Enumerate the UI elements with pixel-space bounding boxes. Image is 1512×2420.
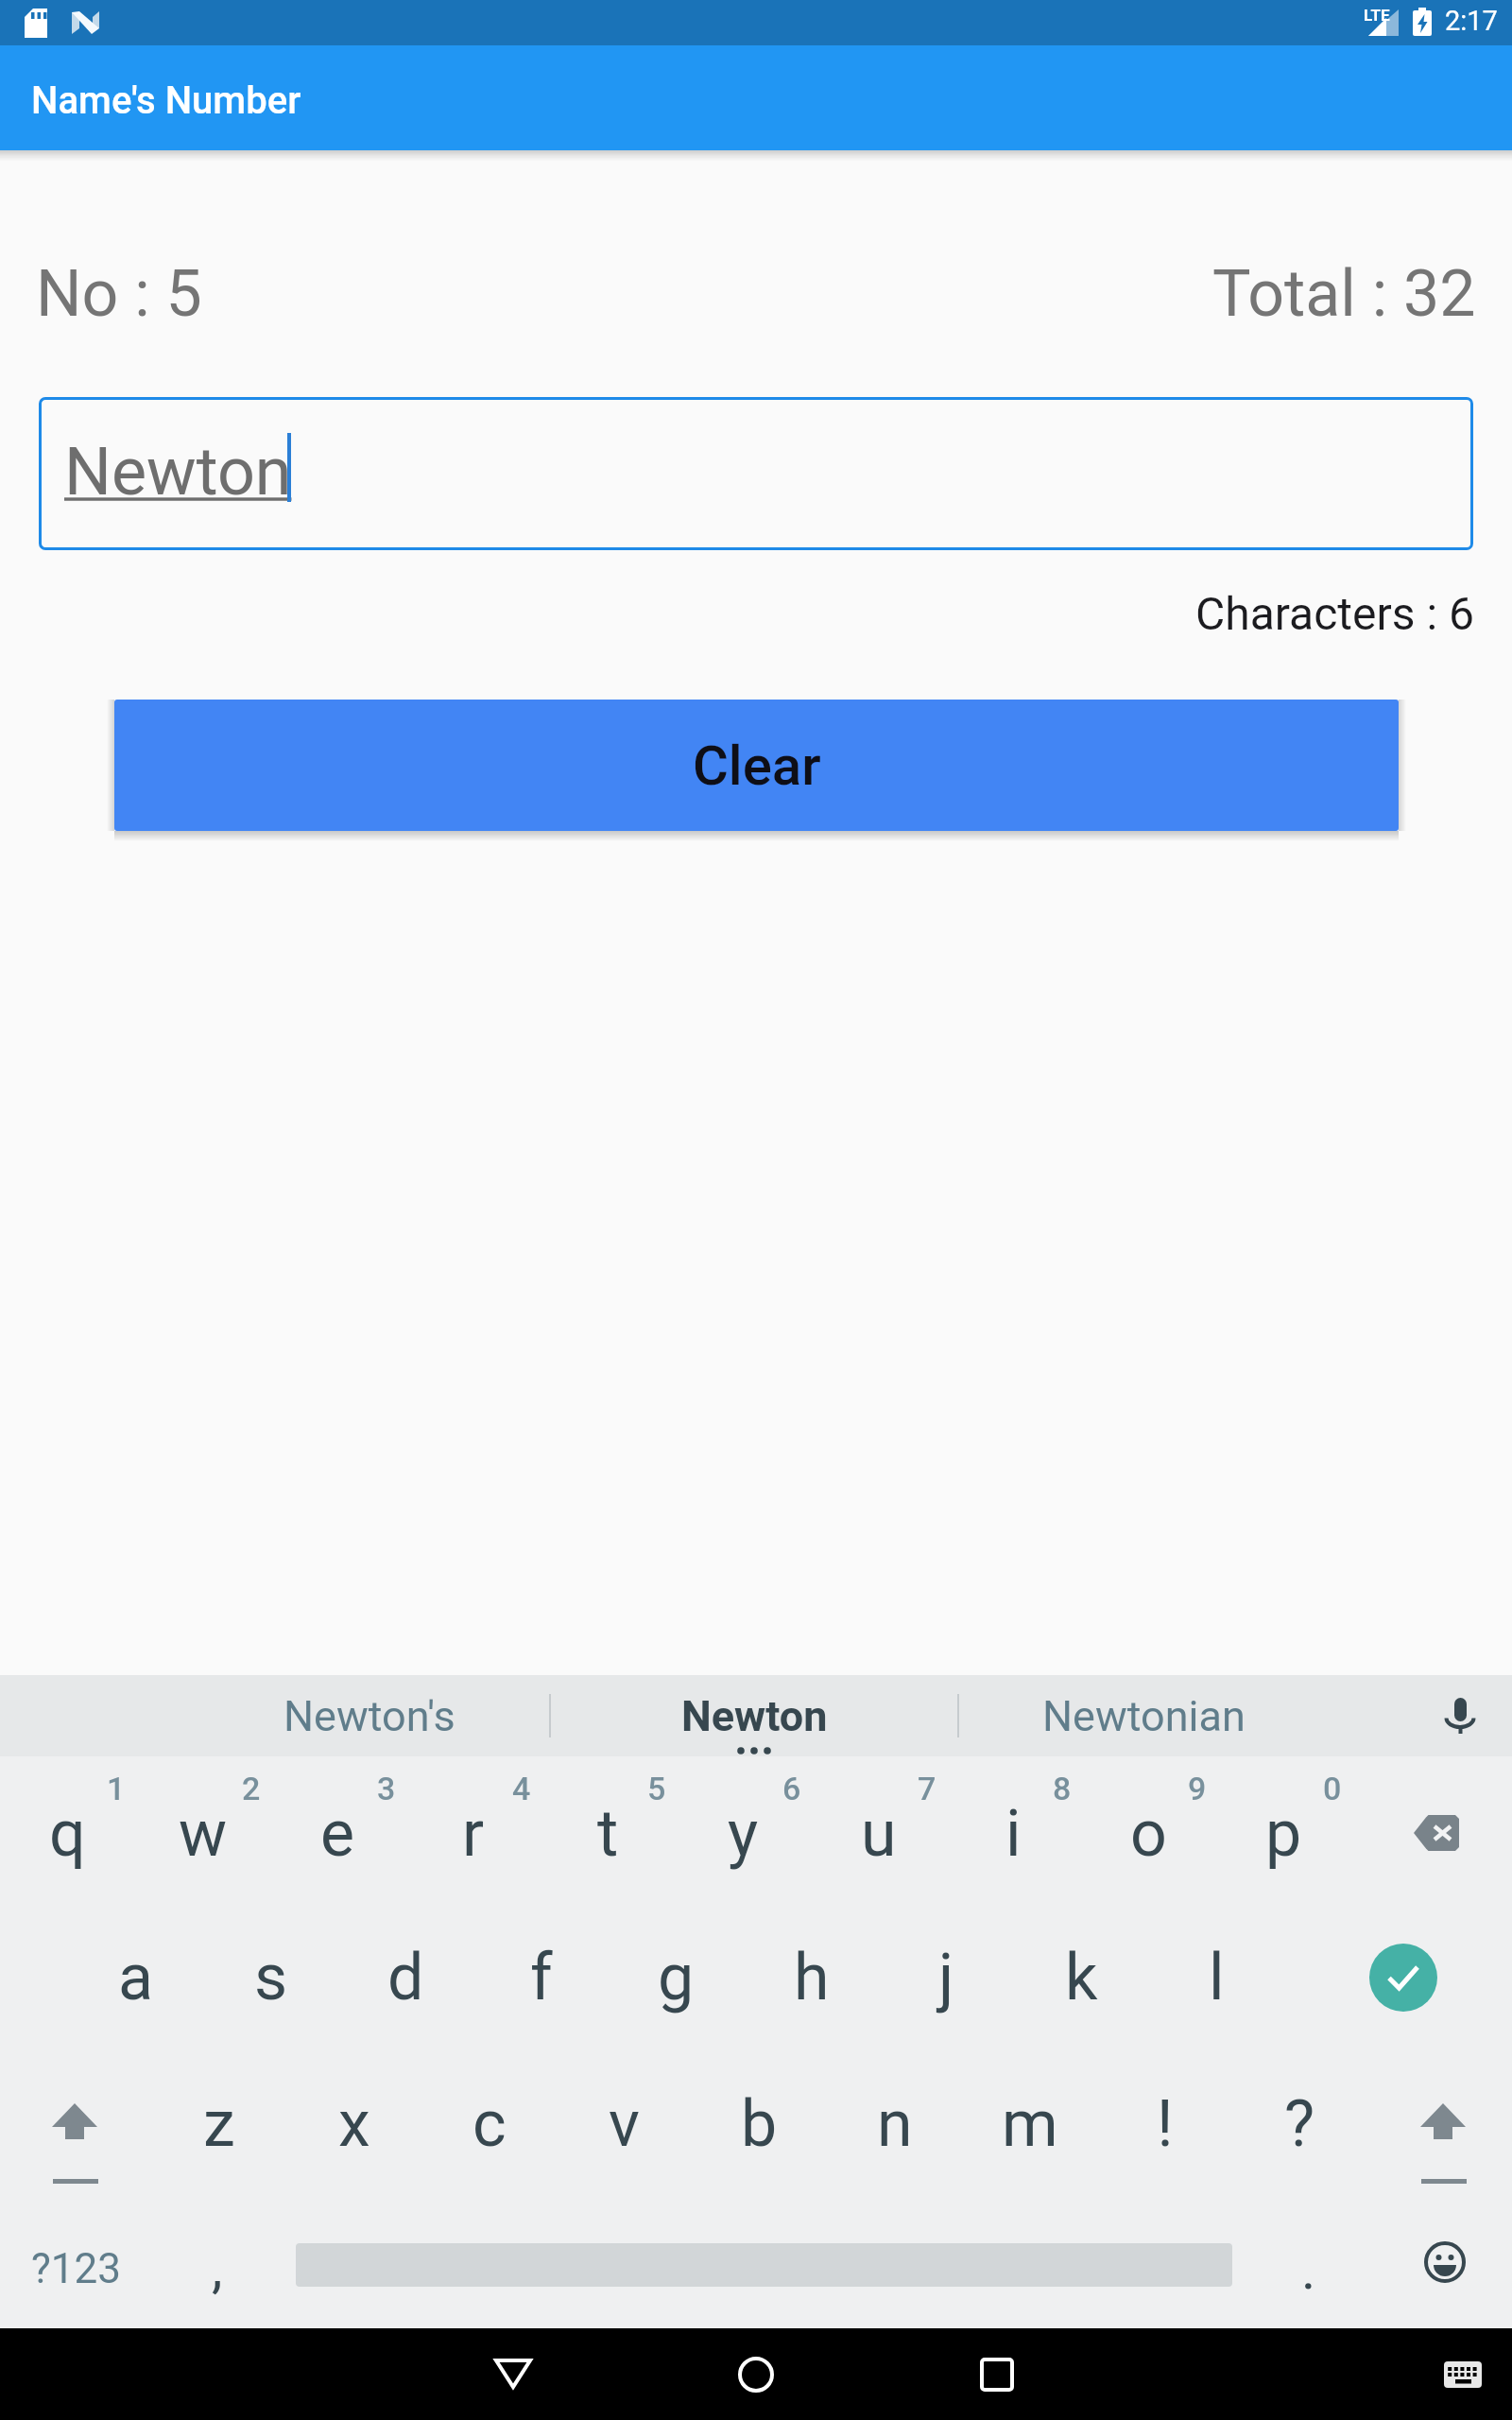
staticText: l <box>1209 1940 1225 2015</box>
button[interactable]: u <box>811 1760 946 1900</box>
staticText: c <box>472 2086 507 2162</box>
staticText: ! <box>1157 2086 1174 2162</box>
button[interactable]: b <box>692 2054 827 2194</box>
button[interactable]: Voice input <box>1389 1675 1512 1756</box>
staticText: Total : 32 <box>1212 256 1476 332</box>
button[interactable]: , <box>151 2199 286 2339</box>
staticText: k <box>1065 1940 1098 2015</box>
staticText: f <box>530 1940 553 2015</box>
button[interactable]: j <box>879 1908 1014 2048</box>
button[interactable]: l <box>1149 1908 1284 2048</box>
staticText: q <box>49 1796 86 1872</box>
button[interactable]: s <box>203 1908 338 2048</box>
button[interactable]: i <box>946 1760 1081 1900</box>
staticText: i <box>1005 1796 1022 1872</box>
button[interactable]: Hide keyboard <box>1416 2328 1510 2420</box>
button[interactable]: Recents <box>945 2328 1049 2420</box>
button[interactable]: Backspace <box>1351 1760 1512 1900</box>
button[interactable]: Emoji <box>1377 2199 1512 2339</box>
staticText: 2 <box>242 1770 261 1807</box>
button[interactable]: h <box>744 1908 879 2048</box>
button[interactable]: Shift <box>0 2054 151 2194</box>
button[interactable]: r <box>405 1760 541 1900</box>
staticText: . <box>1301 2238 1316 2302</box>
button[interactable]: p <box>1216 1760 1351 1900</box>
staticText: Newton <box>64 433 292 510</box>
staticText: d <box>387 1940 424 2015</box>
button[interactable]: e <box>270 1760 405 1900</box>
button[interactable]: Newton <box>551 1675 958 1756</box>
staticText: h <box>794 1940 830 2015</box>
staticText: Clear <box>693 734 821 798</box>
button[interactable]: z <box>151 2054 286 2194</box>
button[interactable]: f <box>473 1908 609 2048</box>
button[interactable]: w <box>135 1760 270 1900</box>
button[interactable]: a <box>68 1908 203 2048</box>
staticText: p <box>1265 1796 1302 1872</box>
button[interactable]: k <box>1014 1908 1149 2048</box>
button[interactable]: m <box>962 2054 1097 2194</box>
staticText: y <box>728 1796 759 1872</box>
staticText: m <box>1002 2086 1058 2162</box>
staticText: u <box>861 1796 897 1872</box>
button[interactable]: Home <box>704 2328 808 2420</box>
staticText: g <box>658 1940 695 2015</box>
staticText: Newtonian <box>1042 1691 1246 1741</box>
staticText: 7 <box>918 1770 936 1807</box>
button[interactable]: y <box>676 1760 811 1900</box>
staticText: , <box>212 2236 223 2300</box>
staticText: t <box>597 1796 619 1872</box>
staticText: Newton <box>681 1691 828 1741</box>
staticText: z <box>203 2086 235 2162</box>
button[interactable]: Back <box>461 2328 565 2420</box>
button[interactable]: Clear <box>114 700 1399 831</box>
staticText: LTE <box>1364 6 1390 25</box>
button[interactable]: v <box>557 2054 692 2194</box>
button[interactable]: g <box>609 1908 744 2048</box>
staticText: Newton's <box>283 1691 455 1741</box>
staticText: a <box>118 1940 153 2015</box>
staticText: n <box>877 2086 913 2162</box>
button[interactable]: ?123 <box>0 2199 151 2339</box>
staticText: o <box>1130 1796 1167 1872</box>
button[interactable]: n <box>827 2054 962 2194</box>
staticText: Characters : 6 <box>1195 587 1474 640</box>
button[interactable]: . <box>1242 2199 1377 2339</box>
staticText: 6 <box>782 1770 801 1807</box>
button[interactable]: Shift <box>1367 2054 1512 2194</box>
staticText: ?123 <box>31 2244 121 2293</box>
staticText: v <box>609 2086 640 2162</box>
button[interactable]: x <box>286 2054 421 2194</box>
button[interactable]: Newton <box>39 397 1473 550</box>
staticText: No : 5 <box>36 256 202 332</box>
button[interactable]: Newtonian <box>959 1675 1329 1756</box>
button[interactable]: Newton's <box>189 1675 550 1756</box>
staticText: j <box>938 1940 954 2015</box>
staticText: Name's Number <box>31 78 301 123</box>
staticText: 5 <box>647 1770 666 1807</box>
staticText: 0 <box>1323 1770 1342 1807</box>
button[interactable]: o <box>1081 1760 1216 1900</box>
button[interactable]: d <box>338 1908 473 2048</box>
button[interactable]: t <box>541 1760 676 1900</box>
staticText: 8 <box>1053 1770 1072 1807</box>
staticText: e <box>320 1796 355 1872</box>
button[interactable]: Enter <box>1284 1908 1512 2048</box>
button[interactable]: c <box>421 2054 557 2194</box>
staticText: 9 <box>1188 1770 1207 1807</box>
button[interactable]: q <box>0 1760 135 1900</box>
staticText: ? <box>1284 2086 1315 2162</box>
staticText: 2:17 <box>1445 5 1498 37</box>
staticText: w <box>179 1796 228 1872</box>
staticText: 1 <box>107 1770 126 1807</box>
staticText: x <box>338 2086 370 2162</box>
button[interactable]: ! <box>1097 2054 1232 2194</box>
button[interactable]: ? <box>1232 2054 1367 2194</box>
staticText: 3 <box>377 1770 396 1807</box>
staticText: b <box>741 2086 778 2162</box>
staticText: r <box>462 1796 485 1872</box>
staticText: s <box>254 1940 288 2015</box>
staticText: 4 <box>512 1770 531 1807</box>
button[interactable]: Space <box>286 2199 1242 2339</box>
